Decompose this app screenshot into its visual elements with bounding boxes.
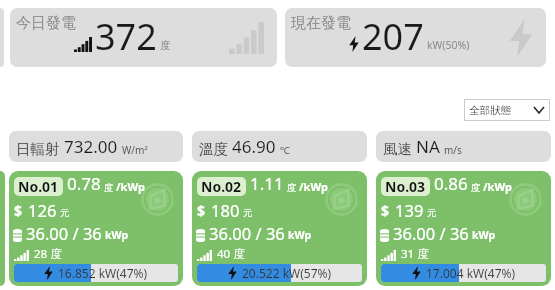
staticText: $ <box>381 201 390 220</box>
staticText: 28 度 <box>34 246 62 262</box>
staticText: 1.11 <box>250 172 284 195</box>
staticText: 今日發電 <box>16 14 76 33</box>
staticText: 139 <box>395 199 424 221</box>
staticText: No.02 <box>201 177 242 196</box>
staticText: m/s <box>444 143 462 157</box>
staticText: $ <box>14 201 23 220</box>
staticText: kWp <box>105 228 129 242</box>
staticText: 現在發電 <box>291 14 351 33</box>
staticText: 732.00 <box>64 135 118 158</box>
staticText: No.01 <box>18 177 59 196</box>
staticText: 207 <box>362 12 424 61</box>
staticText: 風速 <box>383 140 412 158</box>
staticText: 度 <box>287 182 297 194</box>
other: Today energy <box>229 22 264 54</box>
staticText: $ <box>197 201 206 220</box>
staticText: 36.00 / 36 <box>26 222 102 244</box>
staticText: 36.00 / 36 <box>393 222 469 244</box>
staticText: 溫度 <box>199 140 228 158</box>
staticText: kWp <box>288 228 312 242</box>
staticText: /kWp <box>116 179 145 194</box>
staticText: 度 <box>104 182 114 194</box>
staticText: /kWp <box>483 179 512 194</box>
staticText: 16.852 kW(47%) <box>58 265 148 281</box>
staticText: /kWp <box>299 179 328 194</box>
staticText: 36.00 / 36 <box>209 222 285 244</box>
staticText: 180 <box>211 199 240 221</box>
staticText: 元 <box>60 207 70 219</box>
staticText: 126 <box>28 199 57 221</box>
staticText: 0.86 <box>434 172 468 195</box>
other: Current power <box>509 19 533 57</box>
staticText: 0.78 <box>67 172 101 195</box>
button[interactable]: No.02 <box>192 171 367 286</box>
button[interactable]: 風速 <box>376 131 551 162</box>
staticText: 全部狀態 <box>469 104 511 117</box>
staticText: NA <box>416 135 440 158</box>
other: Expand status filter <box>534 107 544 113</box>
staticText: kWp <box>472 228 496 242</box>
button[interactable]: No.03 <box>376 171 551 286</box>
staticText: kW(50%) <box>427 38 470 52</box>
staticText: 31 度 <box>401 246 429 262</box>
staticText: 日輻射 <box>16 140 60 158</box>
staticText: 元 <box>427 207 437 219</box>
staticText: 372 <box>95 12 157 61</box>
staticText: No.03 <box>385 177 426 196</box>
button[interactable]: No.01 <box>9 171 183 286</box>
staticText: 17.004 kW(47%) <box>426 265 516 281</box>
staticText: ℃ <box>280 143 290 157</box>
button[interactable]: 今日發電 <box>10 8 277 67</box>
staticText: 元 <box>243 207 253 219</box>
staticText: 46.90 <box>232 135 276 158</box>
staticText: 度 <box>160 39 171 52</box>
staticText: 40 度 <box>217 246 245 262</box>
button[interactable]: 日輻射 <box>9 131 183 162</box>
staticText: W/m² <box>122 143 148 157</box>
staticText: 20.522 kW(57%) <box>242 265 332 281</box>
button[interactable]: 全部狀態 <box>464 99 550 121</box>
button[interactable]: 溫度 <box>192 131 367 162</box>
staticText: 度 <box>471 182 481 194</box>
button[interactable]: 現在發電 <box>285 8 546 67</box>
